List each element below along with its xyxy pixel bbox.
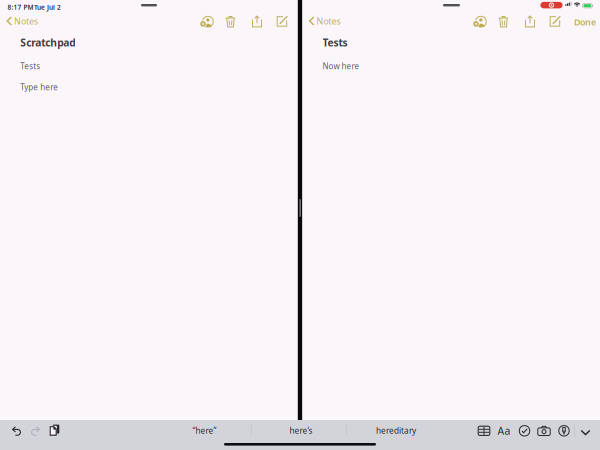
button[interactable]: Table — [476, 423, 492, 439]
button[interactable]: Paste — [46, 422, 62, 438]
staticText: Done — [574, 16, 596, 28]
button[interactable]: Share — [248, 12, 266, 30]
staticText: hereditary — [376, 425, 416, 436]
staticText: 8:17 PM — [8, 3, 34, 12]
button[interactable]: Markup — [556, 423, 572, 439]
button[interactable]: Undo — [8, 423, 24, 439]
staticText: Tue Jul 2 — [34, 3, 61, 12]
button[interactable]: Hide Keyboard — [577, 424, 593, 440]
button[interactable]: Add People — [470, 12, 488, 30]
staticText: Tests — [323, 35, 348, 49]
staticText: Now here — [323, 61, 360, 71]
button[interactable]: Delete — [221, 12, 239, 30]
button[interactable]: Notes — [0, 12, 42, 30]
staticText: Type here — [20, 82, 58, 92]
button[interactable]: hereditary — [348, 420, 443, 441]
button[interactable]: Add People — [197, 12, 215, 30]
staticText: Aa — [497, 424, 510, 438]
staticText: “here” — [192, 425, 216, 436]
button[interactable]: Done — [574, 13, 596, 31]
button[interactable]: Delete — [494, 12, 512, 30]
button[interactable]: Notes — [302, 12, 344, 30]
staticText: Tests — [20, 61, 40, 71]
staticText: Scratchpad — [20, 35, 75, 49]
button[interactable]: Aa — [496, 423, 512, 439]
button[interactable]: “here” — [157, 420, 252, 441]
button[interactable]: Compose — [273, 12, 291, 30]
button[interactable]: Camera — [536, 423, 552, 439]
button[interactable]: Redo — [27, 423, 43, 439]
button[interactable]: Checklist — [516, 423, 532, 439]
staticText: here’s — [289, 425, 312, 436]
button[interactable]: here’s — [253, 420, 348, 441]
button[interactable]: Compose — [546, 12, 564, 30]
button[interactable]: Share — [521, 12, 539, 30]
staticText: Notes — [14, 15, 38, 27]
staticText: Notes — [316, 15, 340, 27]
